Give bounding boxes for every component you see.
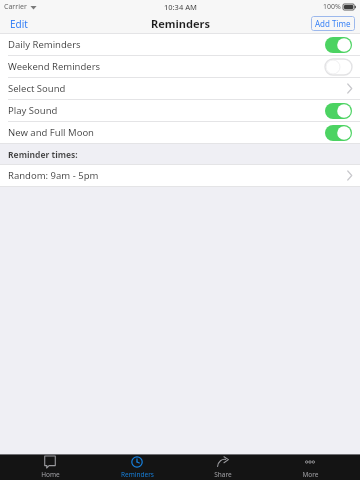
staticText: Carrier	[4, 2, 27, 12]
staticText: Daily Reminders	[8, 38, 81, 51]
button[interactable]: Home	[14, 455, 86, 480]
staticText: Reminders	[121, 470, 154, 479]
staticText: 100%	[323, 2, 341, 12]
other: Reminders	[131, 456, 143, 468]
staticText: Reminders	[151, 16, 210, 31]
button[interactable]: Select Sound	[0, 78, 360, 100]
staticText: Weekend Reminders	[8, 60, 101, 73]
staticText: Add Time	[315, 18, 351, 29]
other: Share	[217, 456, 229, 468]
button[interactable]: Add Time	[311, 16, 355, 31]
staticText: Home	[41, 470, 60, 479]
button[interactable]: More	[274, 455, 346, 480]
staticText: 10:34 AM	[164, 2, 197, 12]
staticText: Select Sound	[8, 82, 66, 95]
staticText: Share	[214, 470, 232, 479]
button[interactable]: Share	[187, 455, 259, 480]
button[interactable]: Weekend Reminders	[0, 56, 360, 78]
staticText: Play Sound	[8, 104, 58, 117]
staticText: Random: 9am - 5pm	[8, 169, 99, 182]
other: More	[304, 456, 316, 468]
button[interactable]: Edit	[0, 14, 38, 33]
staticText: Edit	[10, 17, 28, 30]
button[interactable]: Random: 9am - 5pm	[0, 165, 360, 186]
button[interactable]: Play Sound	[0, 100, 360, 122]
button[interactable]: Daily Reminders	[0, 34, 360, 56]
staticText: More	[302, 470, 319, 479]
staticText: Reminder times:	[8, 149, 78, 161]
other: Home	[44, 456, 56, 468]
button[interactable]: Reminders	[101, 455, 173, 480]
button[interactable]: New and Full Moon	[0, 122, 360, 143]
staticText: New and Full Moon	[8, 126, 94, 139]
